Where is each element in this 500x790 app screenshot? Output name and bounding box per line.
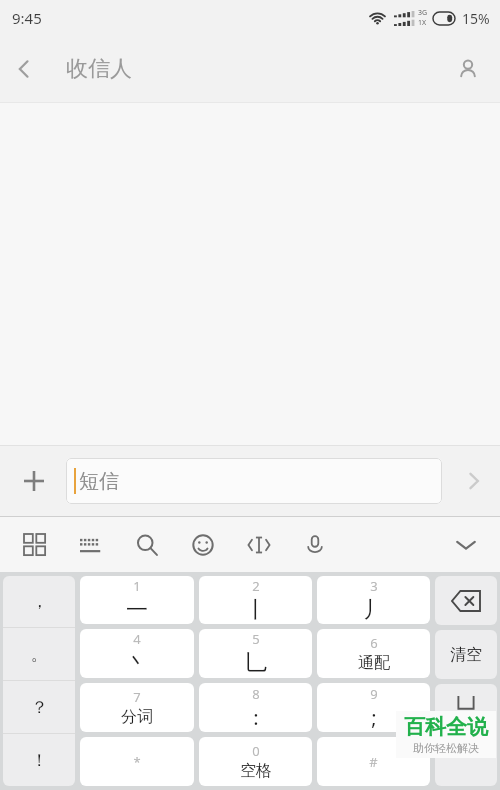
button[interactable]: Backspace <box>435 576 497 625</box>
staticText: 1X <box>418 18 427 28</box>
button[interactable]: 2 <box>199 576 312 624</box>
staticText: ？ <box>31 697 48 718</box>
button[interactable]: Voice input <box>298 528 332 562</box>
staticText: 9 <box>370 685 378 703</box>
staticText: 收信人 <box>66 55 132 83</box>
staticText: 分词 <box>121 707 153 727</box>
button[interactable]: Move cursor <box>242 528 276 562</box>
staticText: 3G <box>418 8 428 18</box>
staticText: 4 <box>133 630 141 648</box>
button[interactable]: Back <box>0 45 48 93</box>
staticText: 2 <box>252 577 260 595</box>
button[interactable]: 4 <box>80 629 194 678</box>
staticText: 7 <box>133 688 141 706</box>
button[interactable]: Hide keyboard <box>444 523 488 567</box>
staticText: # <box>369 753 378 771</box>
button[interactable]: 6 <box>317 629 430 678</box>
staticText: 丿 <box>363 596 385 624</box>
button[interactable]: 1 <box>80 576 194 624</box>
staticText: ; <box>371 704 377 731</box>
button[interactable]: 0 <box>199 737 312 786</box>
button[interactable]: # <box>317 737 430 786</box>
button[interactable]: Emoji <box>186 528 220 562</box>
button[interactable]: Search <box>130 528 164 562</box>
button[interactable]: ！ <box>3 734 75 786</box>
staticText: 短信 <box>79 469 119 494</box>
button[interactable]: 清空 <box>435 630 497 679</box>
staticText: 乚 <box>245 649 267 677</box>
button[interactable]: 5 <box>199 629 312 678</box>
staticText: 1 <box>133 577 141 595</box>
staticText: 空格 <box>240 761 272 781</box>
button[interactable]: ？ <box>3 681 75 733</box>
staticText: 丶 <box>126 649 148 677</box>
staticText: 。 <box>31 644 48 665</box>
staticText: ， <box>31 591 48 612</box>
staticText: : <box>253 704 259 731</box>
staticText: 3 <box>370 577 378 595</box>
staticText: 丨 <box>245 596 267 624</box>
staticText: * <box>133 753 141 771</box>
button[interactable]: Contacts <box>446 47 490 91</box>
button[interactable]: Apps <box>18 528 52 562</box>
staticText: 8 <box>252 685 260 703</box>
staticText: 通配 <box>358 653 390 673</box>
button[interactable]: 短信 <box>66 458 442 504</box>
button[interactable]: 。 <box>3 628 75 680</box>
staticText: 6 <box>370 634 378 652</box>
staticText: 0 <box>252 742 260 760</box>
button[interactable]: Keyboard layout <box>74 528 108 562</box>
button[interactable]: 7 <box>80 683 194 732</box>
button[interactable]: Add attachment <box>10 457 58 505</box>
staticText: 9:45 <box>12 8 42 28</box>
button[interactable]: 8 <box>199 683 312 732</box>
staticText: 百科全说 <box>404 714 488 740</box>
button[interactable]: Enter <box>435 684 497 786</box>
staticText: 一 <box>126 596 148 624</box>
staticText: 5 <box>252 630 260 648</box>
button[interactable]: Send <box>448 455 500 507</box>
staticText: ！ <box>31 750 48 771</box>
button[interactable]: 3 <box>317 576 430 624</box>
button[interactable]: 9 <box>317 683 430 732</box>
button[interactable]: * <box>80 737 194 786</box>
staticText: 助你轻松解决 <box>413 741 479 755</box>
button[interactable]: ， <box>3 576 75 627</box>
staticText: 清空 <box>450 645 482 665</box>
staticText: 15% <box>462 9 490 28</box>
